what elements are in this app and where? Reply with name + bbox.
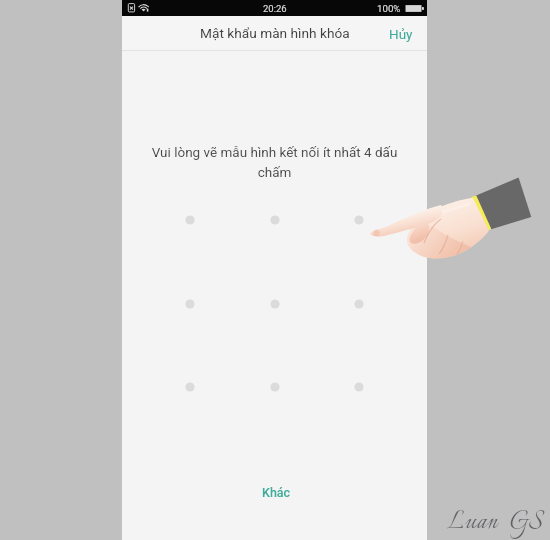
staticText: 20:26 [263,3,287,14]
button[interactable]: Pattern dot 3 [317,178,401,262]
button[interactable]: Hủy [375,18,427,50]
staticText: 100% [377,3,401,14]
staticText: Khác [262,485,291,500]
staticText: Vui lòng vẽ mẫu hình kết nối ít nhất 4 d… [145,144,404,180]
staticText: Mật khẩu màn hình khóa [200,25,350,41]
staticText: Luan GS [447,503,543,540]
staticText: Hủy [389,26,413,42]
button[interactable]: Khác [246,478,307,507]
